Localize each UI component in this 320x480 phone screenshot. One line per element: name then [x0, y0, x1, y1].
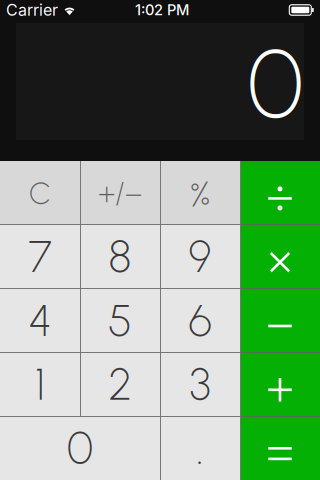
button[interactable]: 3 [160, 352, 240, 416]
staticText: % [190, 174, 210, 215]
staticText: 3 [189, 358, 210, 411]
staticText: 2 [108, 358, 131, 411]
button[interactable]: Add [240, 352, 320, 416]
button[interactable]: C [0, 161, 80, 225]
button[interactable]: 8 [80, 225, 160, 289]
staticText: 1 [35, 358, 45, 411]
button[interactable]: . [160, 416, 240, 480]
staticText: 7 [28, 230, 51, 283]
button[interactable]: 7 [0, 225, 80, 289]
button[interactable]: % [160, 161, 240, 225]
staticText: C [29, 175, 51, 212]
button[interactable]: 0 [0, 416, 160, 480]
staticText: 9 [188, 230, 211, 283]
staticText: 4 [28, 294, 51, 347]
staticText: 5 [108, 294, 132, 347]
button[interactable]: 9 [160, 225, 240, 289]
button[interactable]: Divide [240, 161, 320, 225]
button[interactable]: +/− [80, 161, 160, 225]
staticText: 6 [188, 294, 211, 347]
staticText: 0 [67, 422, 93, 474]
button[interactable]: Multiply [240, 225, 320, 289]
button[interactable]: 1 [0, 352, 80, 416]
staticText: Carrier [6, 0, 58, 20]
button[interactable]: 5 [80, 289, 160, 352]
button[interactable]: Subtract [240, 289, 320, 352]
button[interactable]: 2 [80, 352, 160, 416]
staticText: . [196, 422, 203, 474]
staticText: +/− [98, 175, 142, 211]
staticText: 0 [247, 27, 303, 141]
button[interactable]: Equals [240, 416, 320, 480]
button[interactable]: 4 [0, 289, 80, 352]
button[interactable]: 6 [160, 289, 240, 352]
staticText: 8 [108, 230, 131, 283]
staticText: 1:02 PM [135, 1, 189, 19]
